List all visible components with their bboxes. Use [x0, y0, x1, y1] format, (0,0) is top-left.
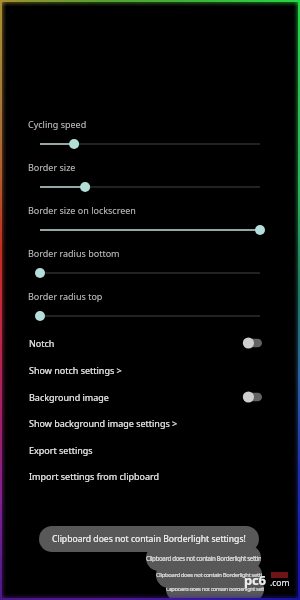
button[interactable]: Export settings — [0, 441, 300, 458]
button[interactable]: Border radius bottom — [0, 247, 300, 285]
staticText: Border size on lockscreen — [28, 204, 136, 216]
button[interactable]: Toggle — [242, 336, 264, 350]
staticText: .com — [270, 577, 290, 589]
staticText: Border size — [28, 161, 76, 173]
staticText: Show background image settings > — [29, 417, 178, 429]
button[interactable]: Cycling speed — [0, 118, 300, 156]
button[interactable]: Notch — [0, 334, 300, 351]
button[interactable]: Background image — [0, 388, 300, 405]
staticText: pc6 — [244, 571, 266, 589]
staticText: Clipboard does not contain Borderlight s… — [146, 554, 261, 562]
staticText: Background image — [29, 391, 109, 403]
staticText: Import settings from clipboard — [29, 470, 160, 482]
staticText: Border radius bottom — [28, 247, 120, 259]
staticText: Notch — [29, 337, 55, 349]
staticText: Clipboard does not contain Borderlight s… — [166, 585, 264, 593]
button[interactable]: Import settings from clipboard — [0, 467, 300, 484]
button[interactable]: Border size on lockscreen — [0, 204, 300, 242]
button[interactable]: Border radius top — [0, 290, 300, 328]
button[interactable]: Show notch settings > — [0, 361, 300, 378]
staticText: Clipboard does not contain Borderlight s… — [52, 533, 246, 545]
button[interactable]: Border size — [0, 161, 300, 199]
staticText: Export settings — [29, 444, 93, 456]
staticText: Border radius top — [28, 290, 103, 302]
button[interactable]: Show background image settings > — [0, 414, 300, 431]
button[interactable]: Toggle — [242, 390, 264, 404]
staticText: Cycling speed — [28, 118, 87, 130]
staticText: Clipboard does not contain Borderlight s… — [156, 571, 262, 579]
staticText: Show notch settings > — [29, 364, 122, 376]
